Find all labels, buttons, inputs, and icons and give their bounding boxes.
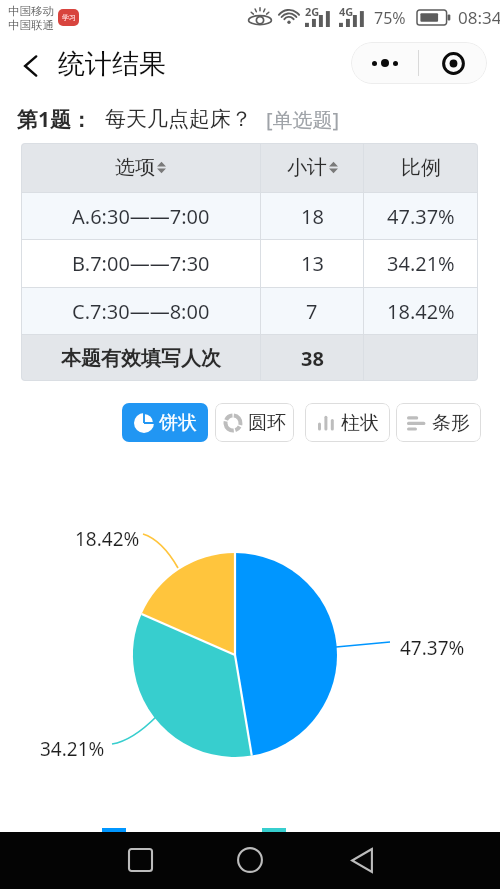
staticText: 本题有效填写人次 <box>61 346 221 371</box>
staticText: 饼状 <box>159 411 197 435</box>
staticText: [单选题] <box>266 106 340 133</box>
staticText: 柱状 <box>341 411 379 435</box>
staticText: 18 <box>301 203 324 230</box>
button[interactable]: 饼状 <box>122 403 208 442</box>
staticText: 38 <box>301 345 324 372</box>
staticText: 47.37% <box>400 635 465 661</box>
staticText: 75% <box>374 7 406 29</box>
staticText: 47.37% <box>387 203 455 230</box>
staticText: 小计 <box>287 155 327 180</box>
staticText: 第1题： <box>17 105 93 134</box>
staticText: 18.42% <box>387 298 455 325</box>
staticText: A.6:30——7:00 <box>72 203 210 230</box>
button[interactable]: 返回 <box>11 47 49 85</box>
staticText: 每天几点起床？ <box>105 106 252 132</box>
staticText: 7 <box>306 298 318 325</box>
staticText: B.7:00——7:30 <box>72 250 210 277</box>
staticText: C.7:30——8:00 <box>72 298 210 325</box>
staticText: 选项 <box>115 155 155 180</box>
button[interactable]: 柱状 <box>305 403 390 442</box>
staticText: 18.42% <box>75 526 140 552</box>
staticText: 中国移动 <box>8 4 54 18</box>
staticText: 4G <box>339 4 354 19</box>
staticText: 中国联通 <box>8 18 54 32</box>
staticText: 34.21% <box>387 250 455 277</box>
button[interactable]: 关闭 <box>419 42 487 84</box>
button[interactable]: 更多 <box>351 42 418 84</box>
staticText: 08:34 <box>458 6 500 29</box>
button[interactable]: 主页 <box>222 834 278 888</box>
staticText: 比例 <box>401 155 441 180</box>
staticText: 学习 <box>62 13 76 22</box>
button[interactable]: 最近任务 <box>112 834 168 888</box>
staticText: 34.21% <box>40 736 105 762</box>
button[interactable]: 条形 <box>396 403 481 442</box>
staticText: 圆环 <box>248 411 286 435</box>
staticText: 13 <box>301 250 324 277</box>
staticText: 条形 <box>432 411 470 435</box>
staticText: 统计结果 <box>58 47 166 81</box>
button[interactable]: 返回 <box>334 834 390 888</box>
button[interactable]: 圆环 <box>215 403 294 442</box>
staticText: 2G <box>305 4 320 19</box>
